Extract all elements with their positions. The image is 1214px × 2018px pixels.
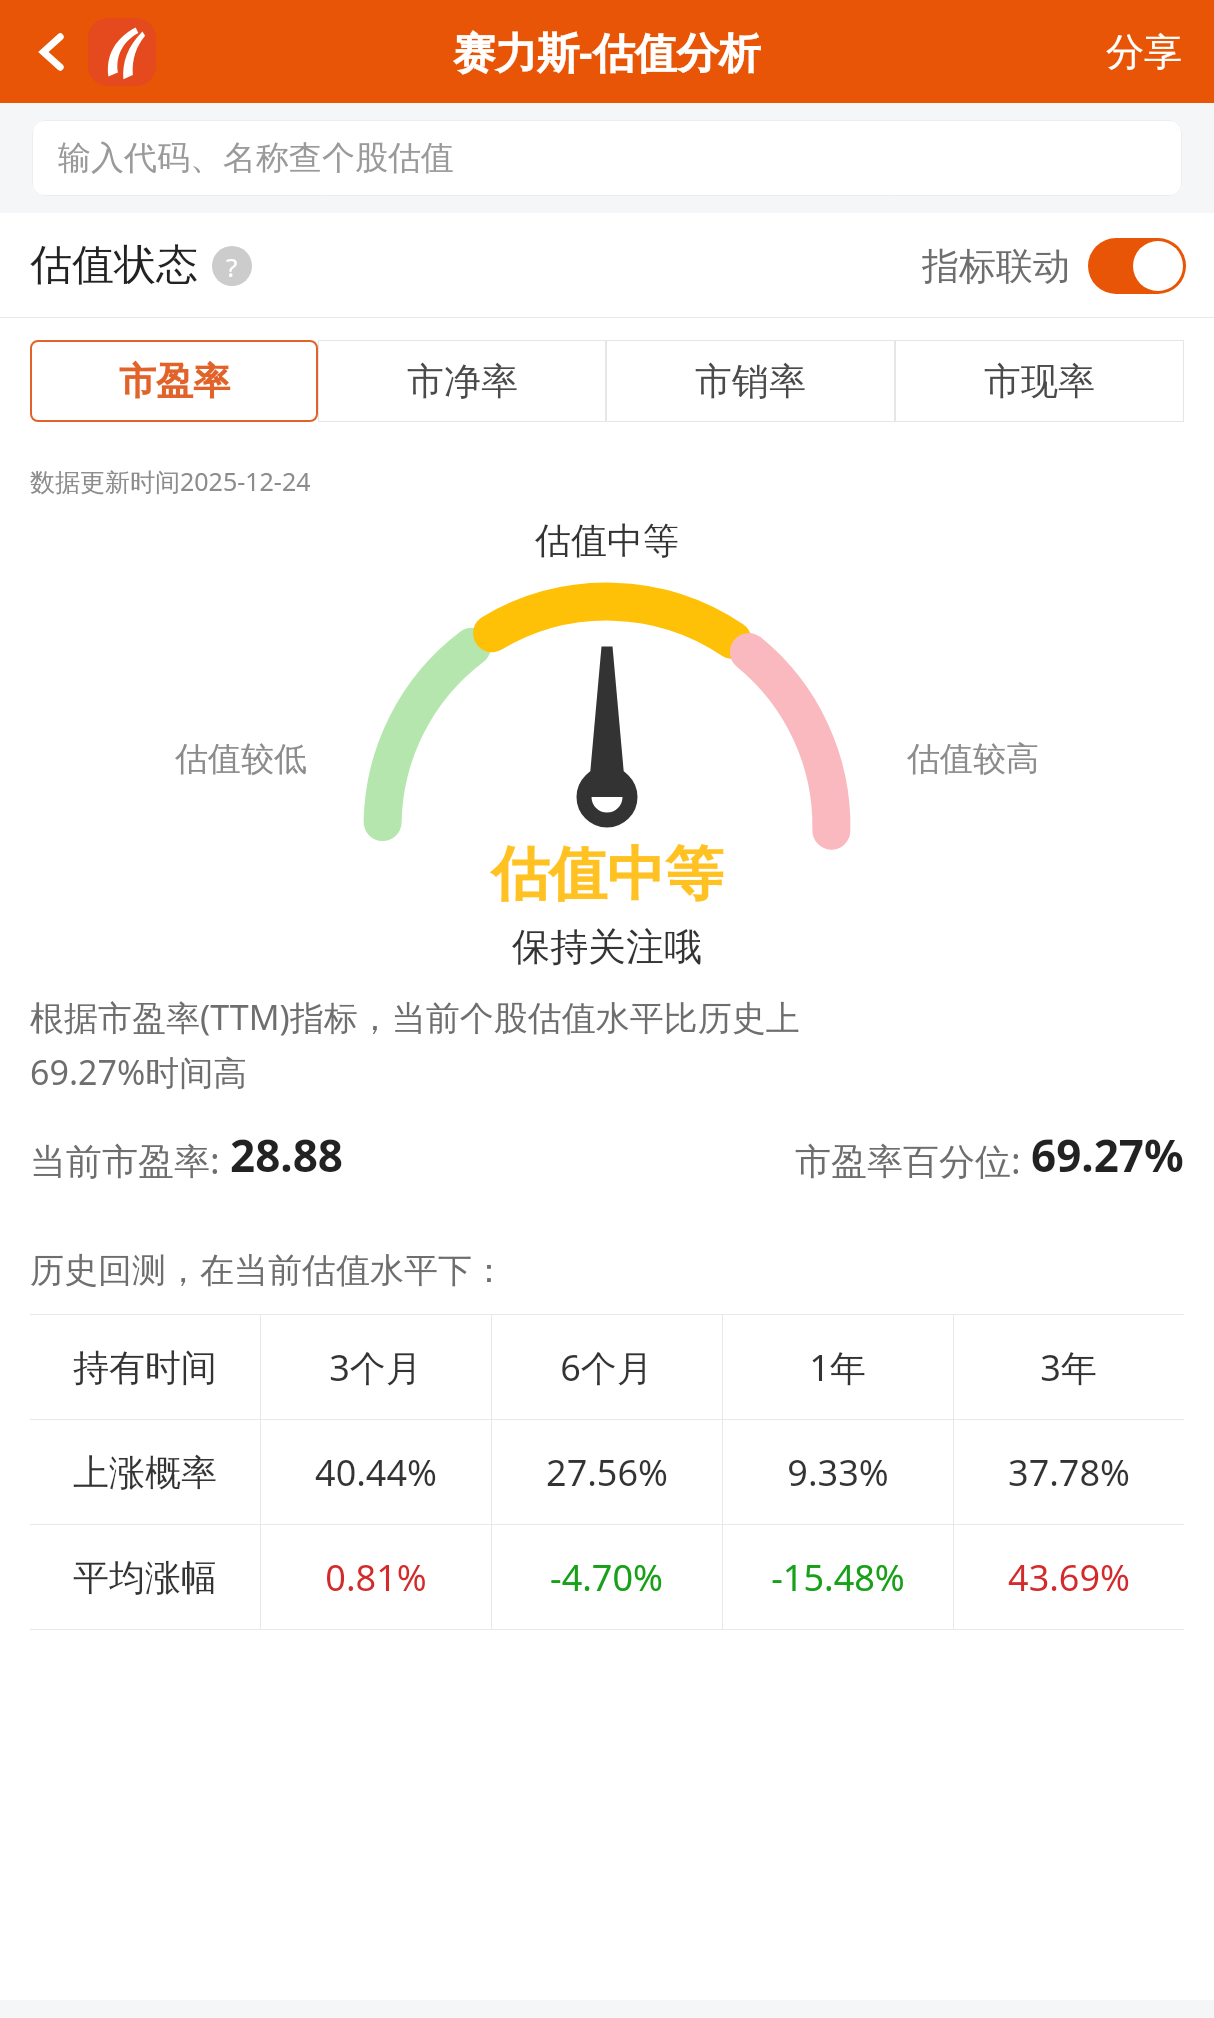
staticText: 上涨概率: [73, 1450, 217, 1495]
staticText: 估值较高: [907, 738, 1039, 780]
staticText: 3年: [1040, 1343, 1097, 1392]
button[interactable]: 指标联动: [922, 238, 1186, 294]
staticText: 市净率: [407, 358, 518, 405]
button[interactable]: 市现率: [895, 340, 1184, 422]
staticText: -4.70%: [550, 1553, 663, 1602]
staticText: 历史回测，在当前估值水平下：: [30, 1249, 506, 1292]
staticText: 40.44%: [315, 1448, 437, 1497]
staticText: 市现率: [984, 358, 1095, 405]
button[interactable]: 帮助说明: [212, 246, 252, 286]
button[interactable]: 输入代码、名称查个股估值: [32, 120, 1182, 196]
button[interactable]: 返回: [18, 17, 88, 87]
staticText: 平均涨幅: [73, 1555, 217, 1600]
staticText: 43.69%: [1008, 1553, 1130, 1602]
staticText: 估值中等: [491, 838, 723, 911]
button[interactable]: 市盈率: [30, 340, 318, 422]
staticText: 分享: [1106, 28, 1182, 76]
button[interactable]: 分享: [1096, 14, 1192, 90]
button[interactable]: 应用图标: [88, 18, 156, 86]
staticText: 持有时间: [73, 1345, 217, 1390]
staticText: 3个月: [329, 1343, 422, 1392]
staticText: 当前市盈率:: [30, 1136, 230, 1185]
staticText: 28.88: [230, 1125, 344, 1185]
staticText: 市盈率: [119, 358, 230, 405]
staticText: 估值中等: [535, 518, 679, 563]
staticText: 根据市盈率(TTM)指标，当前个股估值水平比历史上 69.27%时间高: [30, 994, 800, 1095]
button[interactable]: 市净率: [318, 340, 606, 422]
staticText: 37.78%: [1008, 1448, 1130, 1497]
button[interactable]: 市销率: [606, 340, 895, 422]
staticText: 0.81%: [325, 1553, 427, 1602]
staticText: 69.27%: [1031, 1125, 1184, 1185]
staticText: 赛力斯-估值分析: [453, 23, 761, 80]
staticText: 数据更新时间2025-12-24: [30, 464, 311, 498]
staticText: 市销率: [695, 358, 806, 405]
staticText: -15.48%: [771, 1553, 905, 1602]
staticText: ?: [226, 249, 238, 284]
staticText: 保持关注哦: [512, 923, 702, 968]
staticText: 输入代码、名称查个股估值: [58, 137, 454, 179]
staticText: 指标联动: [922, 243, 1070, 290]
staticText: 9.33%: [787, 1448, 889, 1497]
staticText: 估值较低: [175, 738, 307, 780]
staticText: 1年: [809, 1343, 866, 1392]
staticText: 27.56%: [546, 1448, 668, 1497]
staticText: 估值状态: [30, 239, 198, 292]
staticText: 6个月: [560, 1343, 653, 1392]
staticText: 市盈率百分位:: [795, 1136, 1031, 1185]
